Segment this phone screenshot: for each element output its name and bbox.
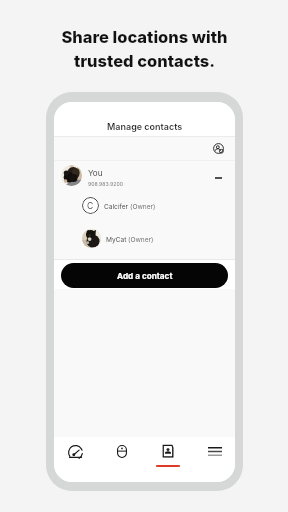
button[interactable]: Account settings	[212, 142, 225, 155]
staticText: Manage contacts	[107, 121, 183, 132]
button[interactable]: Dashboard	[54, 437, 96, 482]
staticText: MyCat	[106, 236, 127, 244]
staticText: 908.983.9200	[88, 181, 123, 187]
button[interactable]: You	[54, 161, 235, 189]
staticText: (Owner)	[128, 236, 154, 244]
button[interactable]: C	[54, 189, 235, 221]
staticText: Calcifer	[104, 203, 129, 211]
button[interactable]: Devices	[101, 437, 143, 482]
staticText: Share locations with trusted contacts.	[61, 27, 228, 71]
button[interactable]: Remove	[212, 172, 224, 184]
button[interactable]: MyCat	[54, 222, 235, 254]
staticText: C	[87, 201, 94, 211]
button[interactable]: More	[194, 437, 235, 482]
button[interactable]: Contacts	[147, 437, 189, 482]
staticText: You	[88, 168, 103, 178]
staticText: (Owner)	[130, 203, 156, 211]
staticText: Add a contact	[117, 271, 173, 281]
button[interactable]: Add a contact	[61, 263, 228, 288]
